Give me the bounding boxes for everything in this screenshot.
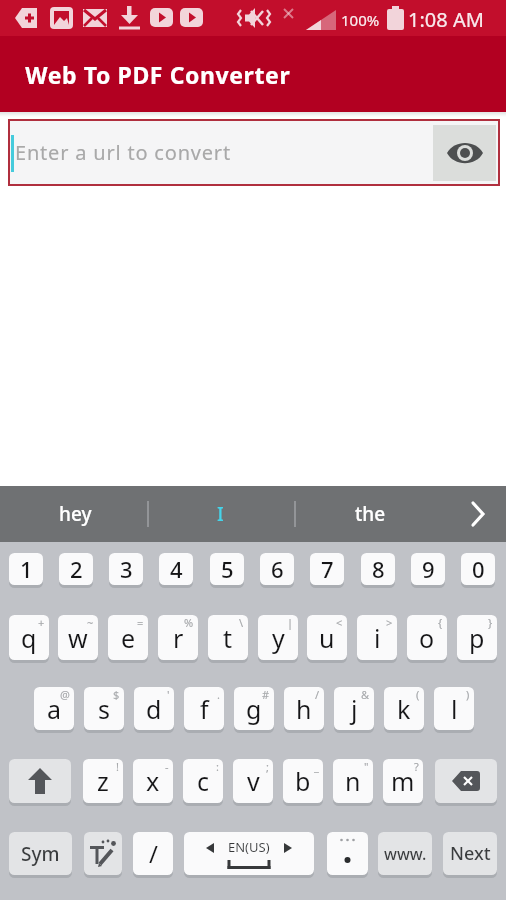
button[interactable]: } [457,615,497,660]
button[interactable]: 2 [59,553,93,585]
staticText: = [137,615,144,630]
staticText: < [336,615,343,630]
button[interactable]: / [284,687,324,730]
button[interactable] [435,759,497,803]
button[interactable]: Enter a url to convert [8,119,500,186]
button[interactable]: 8 [361,553,395,585]
staticText: 1:08 AM [408,6,484,33]
staticText: ) [466,687,470,702]
staticText: x [146,764,160,798]
staticText: + [38,615,45,630]
staticText: | [287,615,294,630]
button[interactable]: ; [233,759,273,803]
staticText: r [173,621,184,655]
button[interactable] [433,125,496,181]
button[interactable]: @ [34,687,74,730]
staticText: 8 [372,554,385,584]
staticText: ; [266,759,269,774]
button[interactable]: 6 [260,553,294,585]
button[interactable]: { [407,615,447,660]
staticText: k [397,692,411,726]
button[interactable]: % [158,615,198,660]
button[interactable]: ! [83,759,123,803]
button[interactable] [327,832,368,875]
button[interactable]: ' [134,687,174,730]
staticText: Sym [21,841,60,867]
staticText: 5 [221,554,234,584]
staticText: h [296,692,312,726]
staticText: w [68,621,88,655]
button[interactable]: & [334,687,374,730]
button[interactable]: I [185,486,255,542]
button[interactable]: # [234,687,274,730]
staticText: e [121,621,136,655]
staticText: 6 [271,554,284,584]
button[interactable]: ( [384,687,424,730]
button[interactable]: . [184,687,224,730]
button[interactable]: / [133,832,173,875]
button[interactable]: EN(US) [184,832,314,875]
staticText: 4 [170,554,183,584]
staticText: } [488,615,493,630]
button[interactable]: 4 [159,553,193,585]
button[interactable]: | [258,615,298,660]
staticText: 100% [341,10,380,30]
staticText: { [438,615,443,630]
staticText: 2 [70,554,83,584]
button[interactable]: ~ [58,615,98,660]
button[interactable]: ? [383,759,423,803]
staticText: " [364,759,369,774]
button[interactable]: 9 [411,553,445,585]
button[interactable]: + [9,615,49,660]
button[interactable] [84,832,122,875]
button[interactable]: $ [84,687,124,730]
button[interactable]: \ [208,615,248,660]
button[interactable]: = [108,615,148,660]
staticText: the [355,501,386,527]
staticText: y [272,621,285,655]
staticText: j [351,692,358,726]
staticText: $ [113,687,120,702]
staticText: c [197,764,210,798]
staticText: s [98,692,110,726]
button[interactable]: - [133,759,173,803]
staticText: ? [414,759,419,774]
button[interactable]: < [307,615,347,660]
button[interactable]: ) [434,687,474,730]
staticText: EN(US) [228,838,270,856]
staticText: a [47,692,62,726]
button[interactable]: : [183,759,223,803]
button[interactable]: the [330,486,410,542]
staticText: / [149,837,158,870]
button[interactable]: 0 [461,553,495,585]
staticText: 9 [422,554,435,584]
button[interactable]: 5 [210,553,244,585]
button[interactable]: 3 [109,553,143,585]
staticText: \ [239,615,244,630]
button[interactable]: Next [443,832,497,875]
staticText: # [262,687,270,702]
staticText: / [315,687,320,702]
button[interactable]: Sym [9,832,72,875]
staticText: www. [384,843,427,865]
button[interactable]: hey [30,486,120,542]
staticText: & [361,687,370,702]
button[interactable]: www. [378,832,432,875]
button[interactable] [9,759,71,803]
staticText: f [200,692,209,726]
staticText: 0 [472,554,485,584]
staticText: l [451,692,458,726]
staticText: @ [60,687,70,702]
staticText: p [469,621,485,655]
staticText: Enter a url to convert [15,139,231,166]
button[interactable]: > [357,615,397,660]
button[interactable]: 1 [9,553,43,585]
staticText: z [97,764,109,798]
staticText: b [295,764,311,798]
button[interactable]: _ [283,759,323,803]
button[interactable]: 7 [310,553,344,585]
staticText: 1 [20,554,33,584]
button[interactable] [455,486,500,542]
button[interactable]: " [333,759,373,803]
staticText: ~ [87,615,94,630]
